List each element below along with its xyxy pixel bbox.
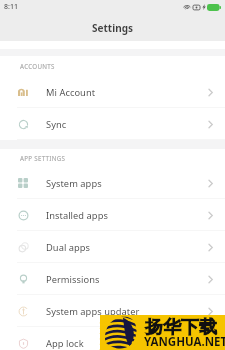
button[interactable]: Permissions xyxy=(0,263,225,295)
staticText: Dual apps xyxy=(46,241,91,254)
staticText: YANGHUA.NET xyxy=(144,334,225,350)
staticText: ACCOUNTS xyxy=(20,62,55,70)
staticText: System apps xyxy=(46,177,102,190)
button[interactable]: App lock xyxy=(0,327,225,350)
button[interactable]: Installed apps xyxy=(0,199,225,231)
staticText: Settings xyxy=(92,21,133,35)
staticText: 8:11 xyxy=(4,2,18,12)
staticText: Mi Account xyxy=(46,86,96,99)
button[interactable]: System apps xyxy=(0,167,225,199)
button[interactable]: Sync xyxy=(0,108,225,140)
button[interactable]: System apps updater xyxy=(0,295,225,327)
staticText: Sync xyxy=(46,118,67,131)
staticText: Permissions xyxy=(46,273,100,286)
staticText: APP SETTINGS xyxy=(20,154,66,162)
staticText: App lock xyxy=(46,337,84,350)
staticText: System apps updater xyxy=(46,305,140,318)
staticText: 扬华下载 xyxy=(145,316,217,339)
button[interactable]: Mi Account xyxy=(0,76,225,108)
button[interactable]: Dual apps xyxy=(0,231,225,263)
staticText: Installed apps xyxy=(46,209,108,222)
